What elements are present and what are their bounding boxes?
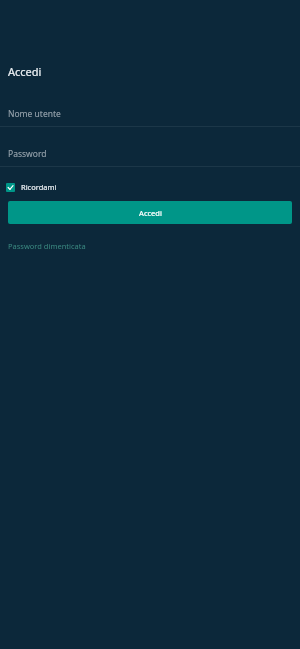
staticText: Password dimenticata <box>8 241 86 251</box>
button[interactable]: Nome utente <box>0 108 300 127</box>
staticText: Accedi <box>139 208 162 218</box>
button[interactable]: Password <box>0 148 300 167</box>
staticText: Password <box>8 148 47 160</box>
button[interactable]: Ricordami <box>5 180 58 194</box>
staticText: Accedi <box>8 64 42 79</box>
button[interactable]: Accedi <box>8 201 292 224</box>
staticText: Ricordami <box>21 182 57 192</box>
button[interactable]: Password dimenticata <box>8 239 86 253</box>
staticText: Nome utente <box>8 108 61 120</box>
